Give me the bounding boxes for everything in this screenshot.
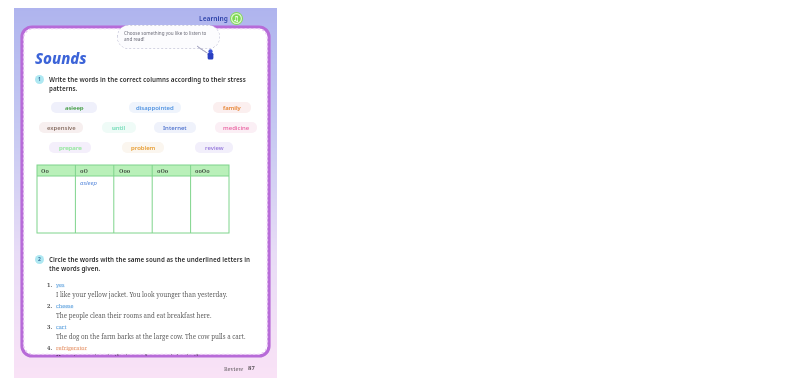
staticText: Oo: [41, 167, 49, 175]
staticText: 87: [248, 364, 255, 372]
button[interactable]: medicine: [215, 122, 257, 133]
button[interactable]: 2.: [47, 302, 257, 319]
button[interactable]: review: [195, 142, 233, 153]
button[interactable]: prepare: [49, 142, 91, 153]
staticText: expensive: [47, 124, 76, 132]
staticText: yes: [56, 281, 65, 288]
button[interactable]: expensive: [39, 122, 83, 133]
button[interactable]: Internet: [154, 122, 196, 133]
button[interactable]: Choose something you like to listen to a…: [117, 25, 220, 49]
staticText: Sounds: [35, 48, 87, 68]
button[interactable]: 4.: [47, 344, 257, 356]
staticText: until: [112, 124, 126, 132]
staticText: oOo: [157, 167, 169, 175]
staticText: The people clean their rooms and eat bre…: [56, 311, 212, 319]
staticText: Circle the words with the same sound as …: [49, 255, 251, 273]
button[interactable]: problem: [122, 142, 164, 153]
staticText: asleep: [65, 104, 84, 112]
staticText: Choose something you like to listen to a…: [124, 30, 213, 42]
staticText: The dog on the farm barks at the large c…: [56, 332, 246, 340]
button[interactable]: until: [102, 122, 136, 133]
staticText: Ooo: [119, 167, 131, 175]
staticText: review: [205, 144, 224, 152]
button[interactable]: disappointed: [129, 102, 181, 113]
staticText: ♫: [233, 15, 240, 23]
staticText: Review: [224, 365, 244, 372]
button[interactable]: Oo: [37, 165, 229, 233]
staticText: 2: [38, 256, 41, 263]
staticText: 1.: [47, 281, 53, 289]
staticText: I like your yellow jacket. You look youn…: [56, 290, 228, 298]
staticText: family: [223, 104, 241, 112]
staticText: Learning: [199, 14, 228, 23]
button[interactable]: 1: [35, 75, 257, 93]
staticText: Internet: [163, 124, 187, 132]
staticText: asleep: [80, 179, 98, 187]
button[interactable]: 3.: [47, 323, 257, 340]
staticText: He put some jam in the jar and orange ju…: [56, 353, 220, 356]
staticText: 3.: [47, 323, 53, 331]
button[interactable]: 1.: [47, 281, 257, 298]
staticText: cheese: [56, 302, 74, 309]
button[interactable]: 2: [35, 255, 257, 273]
staticText: refrigerator: [56, 344, 88, 351]
staticText: ooOo: [195, 167, 210, 175]
button[interactable]: asleep: [51, 102, 97, 113]
staticText: 1: [38, 76, 41, 83]
button[interactable]: Learning: [199, 12, 243, 25]
staticText: medicine: [223, 124, 250, 132]
staticText: 4.: [47, 344, 53, 352]
staticText: 2.: [47, 302, 53, 310]
staticText: prepare: [59, 144, 82, 152]
staticText: disappointed: [136, 104, 174, 112]
other: Listening activity: [230, 12, 243, 25]
button[interactable]: family: [213, 102, 251, 113]
staticText: problem: [131, 144, 156, 152]
staticText: oO: [80, 167, 88, 175]
staticText: cart: [56, 323, 67, 330]
staticText: Write the words in the correct columns a…: [49, 75, 246, 93]
